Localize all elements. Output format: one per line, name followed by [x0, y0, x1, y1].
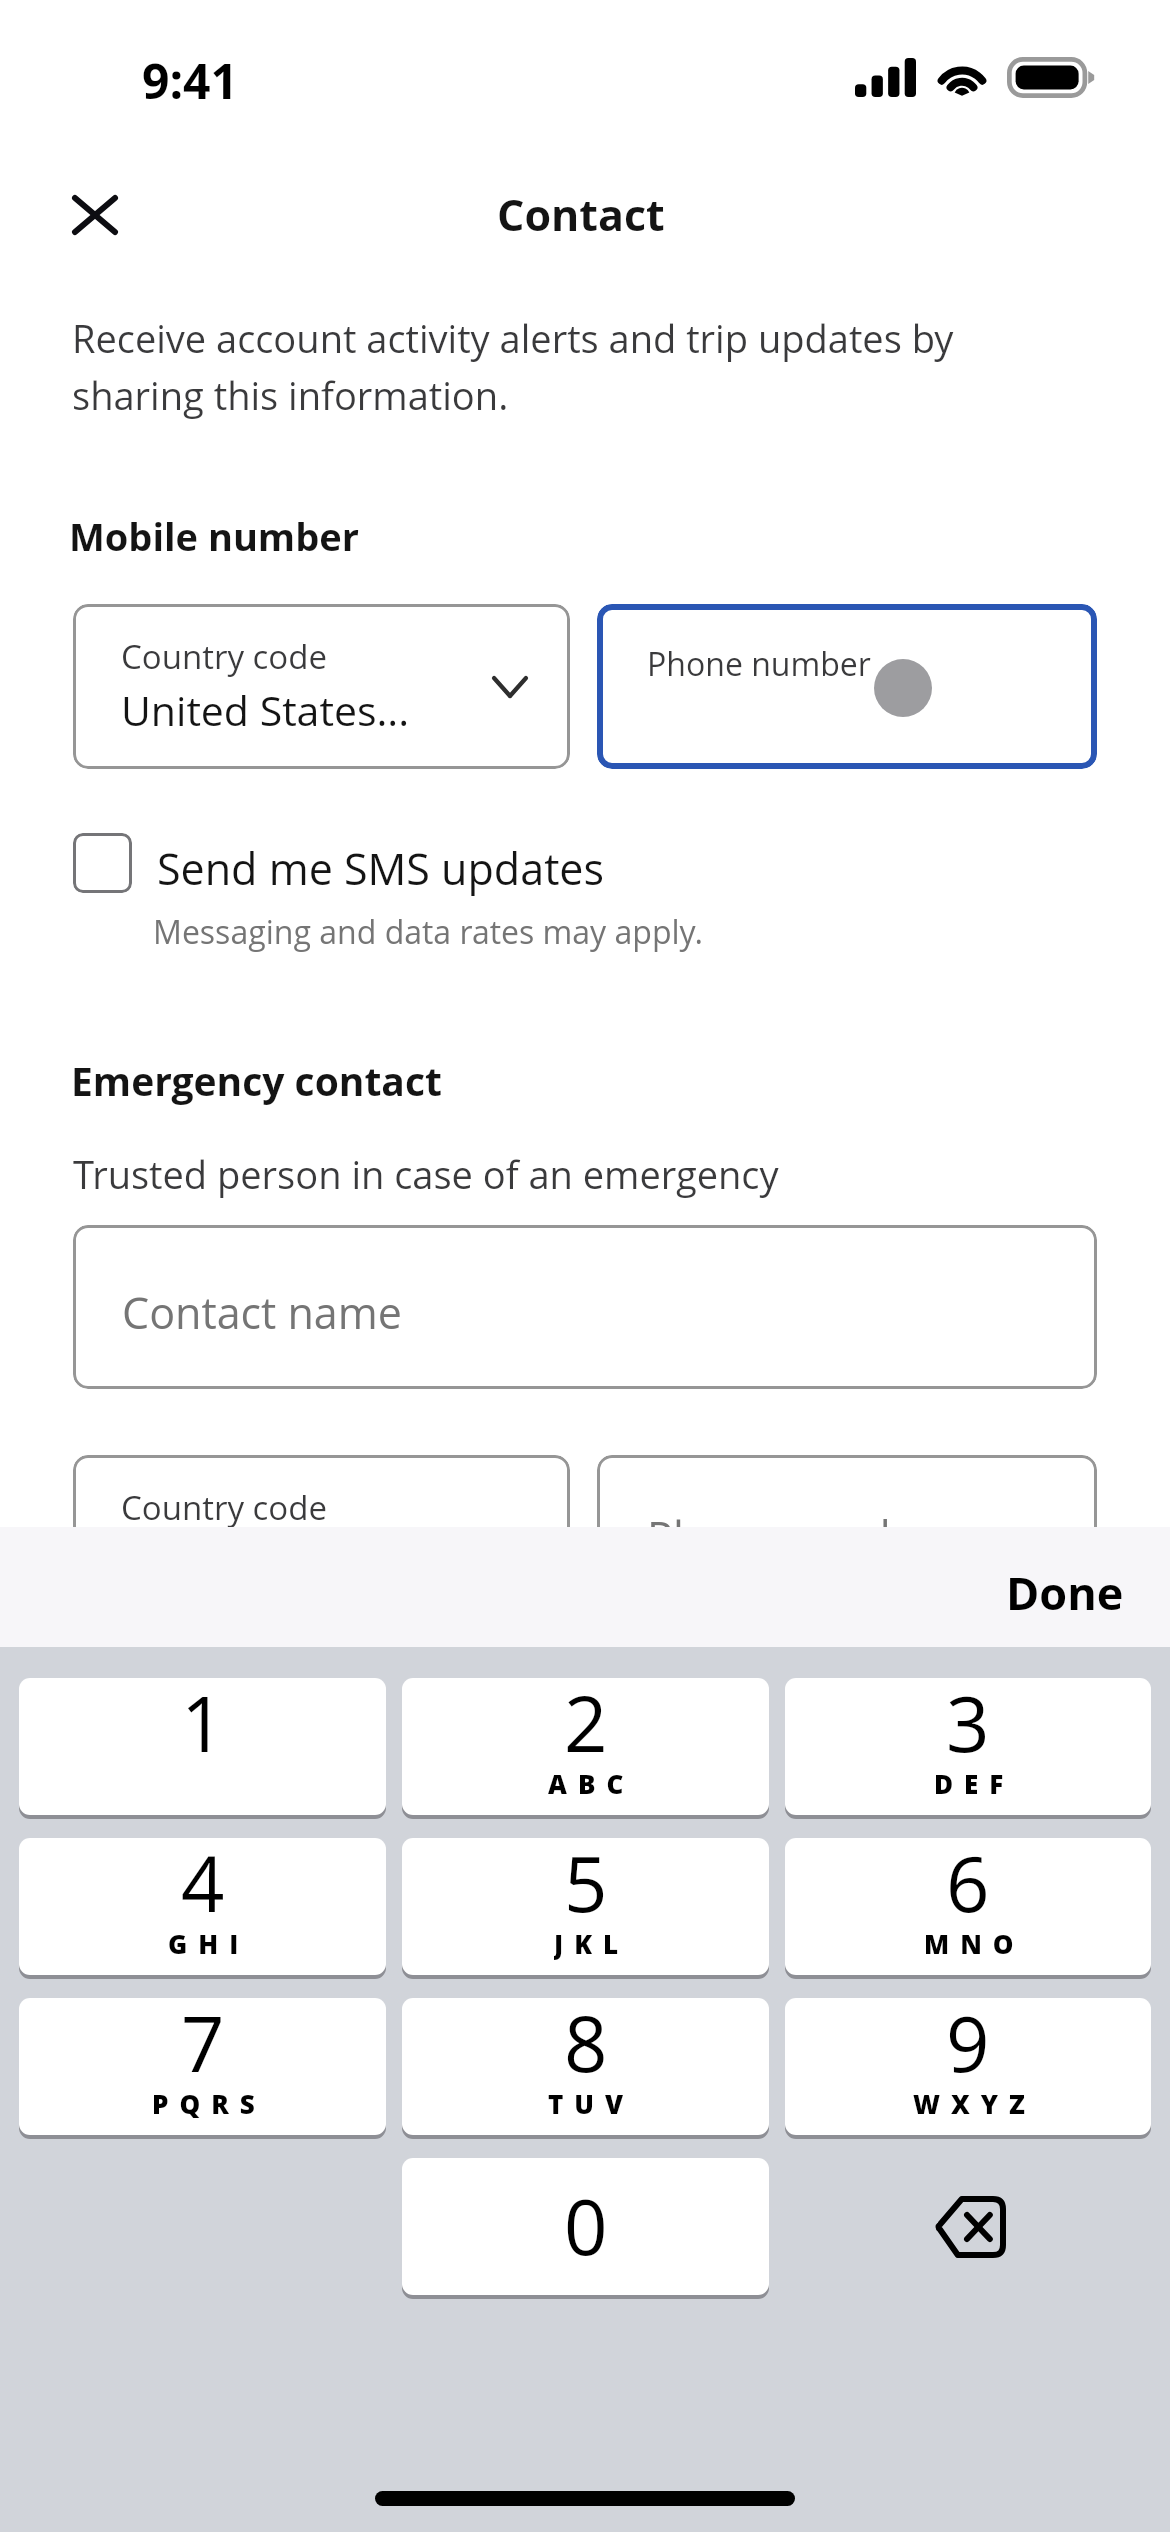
button[interactable]: 3 [785, 1678, 1151, 1815]
button[interactable]: Country code [73, 1455, 570, 1620]
staticText: GHI [168, 1926, 250, 1960]
staticText: Done [1006, 1562, 1124, 1623]
button[interactable]: 1 [19, 1678, 386, 1815]
button[interactable]: Phone number [597, 604, 1097, 769]
staticText: 7 [181, 1998, 225, 2094]
staticText: 6 [946, 1838, 990, 1934]
button[interactable]: Backspace [785, 2158, 1151, 2295]
staticText: DEF [934, 1766, 1015, 1800]
staticText: WXYZ [913, 2086, 1036, 2120]
button[interactable]: Done [982, 1541, 1148, 1634]
button[interactable]: Contact name [73, 1225, 1097, 1389]
staticText: 9 [946, 1998, 990, 2094]
staticText: United States... [121, 682, 410, 738]
button[interactable]: Country code [73, 604, 570, 769]
staticText: 0 [564, 2174, 608, 2277]
staticText: TUV [548, 2086, 635, 2120]
button[interactable]: 8 [402, 1998, 769, 2135]
staticText: Mobile number [69, 510, 359, 562]
button[interactable]: Close [48, 166, 142, 260]
staticText: Phone number [647, 642, 871, 686]
staticText: Emergency contact [71, 1054, 442, 1107]
staticText: JKL [554, 1926, 630, 1960]
button[interactable]: 4 [19, 1838, 386, 1975]
staticText: 2 [564, 1678, 608, 1774]
button[interactable]: 5 [402, 1838, 769, 1975]
button[interactable]: 2 [402, 1678, 769, 1815]
staticText: 1 [181, 1678, 225, 1774]
staticText: MNO [924, 1926, 1025, 1960]
staticText: 8 [564, 1998, 608, 2094]
button[interactable]: 0 [402, 2158, 769, 2295]
staticText: Send me SMS updates [157, 839, 604, 898]
button[interactable]: 7 [19, 1998, 386, 2135]
staticText: 9:41 [142, 48, 238, 113]
staticText: ABC [548, 1766, 635, 1800]
staticText: Country code [121, 1485, 327, 1530]
staticText: Country code [121, 634, 327, 679]
staticText: Contact [497, 185, 665, 244]
staticText: Messaging and data rates may apply. [153, 910, 703, 954]
staticText: Receive account activity alerts and trip… [72, 312, 1012, 421]
button[interactable]: 9 [785, 1998, 1151, 2135]
button[interactable]: Phone number [597, 1455, 1097, 1620]
staticText: 3 [946, 1678, 990, 1774]
staticText: Trusted person in case of an emergency [73, 1148, 779, 1200]
button[interactable]: Send me SMS updates checkbox [73, 833, 132, 893]
button[interactable]: 6 [785, 1838, 1151, 1975]
staticText: Contact name [122, 1283, 402, 1342]
staticText: 4 [181, 1838, 225, 1934]
staticText: PQRS [152, 2086, 266, 2120]
staticText: 5 [564, 1838, 608, 1934]
staticText: Phone number [647, 1507, 948, 1566]
